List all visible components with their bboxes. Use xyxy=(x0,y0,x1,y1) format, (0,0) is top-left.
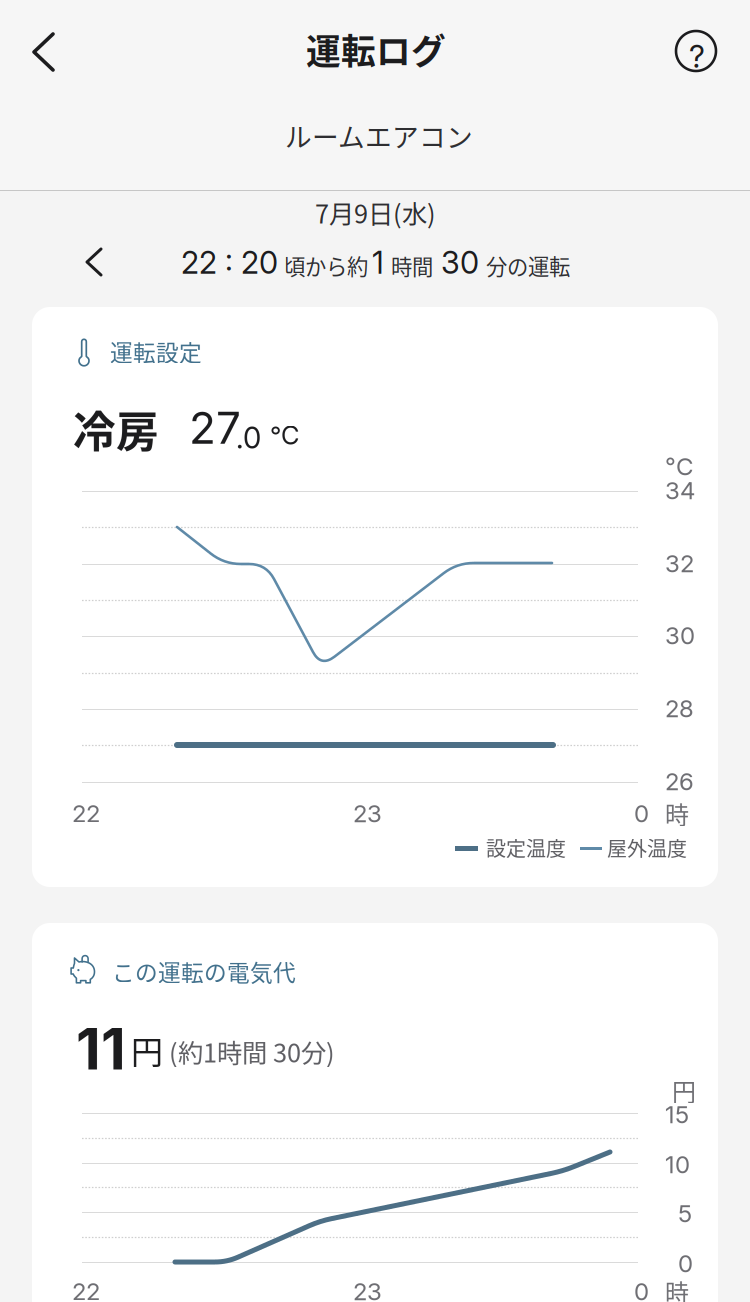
staticText: 23 xyxy=(353,799,382,828)
staticText: 冷房 xyxy=(73,398,159,460)
staticText: (約1時間 30分) xyxy=(169,1033,335,1070)
staticText: 32 xyxy=(665,549,694,578)
button[interactable]: Help xyxy=(654,0,746,104)
staticText: °C xyxy=(665,452,693,481)
staticText: 30 xyxy=(665,621,695,650)
staticText: 時間 xyxy=(391,250,433,281)
staticText: 22 xyxy=(72,799,100,828)
staticText: 22 : 20 xyxy=(181,244,278,281)
staticText: 1 xyxy=(372,244,384,281)
staticText: °C xyxy=(270,420,299,451)
staticText: 11 xyxy=(76,1014,126,1083)
staticText: 分の運転 xyxy=(486,250,570,281)
staticText: 0 xyxy=(634,1277,649,1302)
staticText: 円 xyxy=(131,1027,163,1073)
staticText: 頃から約 xyxy=(284,250,368,281)
staticText: 設定温度 xyxy=(486,833,566,862)
staticText: 0 xyxy=(634,799,649,828)
staticText: 運転ログ xyxy=(306,24,446,74)
staticText: 30 xyxy=(441,244,479,281)
staticText: 運転設定 xyxy=(110,335,202,368)
staticText: 円 xyxy=(672,1073,696,1108)
staticText: 屋外温度 xyxy=(607,833,687,862)
staticText: 7月9日(水) xyxy=(315,194,436,231)
staticText: .0 xyxy=(236,420,261,455)
staticText: 34 xyxy=(665,476,695,505)
button[interactable]: Previous session xyxy=(61,235,141,297)
staticText: 時 xyxy=(665,1274,689,1302)
staticText: 23 xyxy=(353,1277,382,1302)
button[interactable]: Back xyxy=(0,0,92,104)
staticText: 28 xyxy=(665,694,694,723)
staticText: この運転の電気代 xyxy=(112,955,296,988)
staticText: 10 xyxy=(665,1150,690,1179)
staticText: ? xyxy=(689,38,705,75)
staticText: ルームエアコン xyxy=(285,116,473,155)
staticText: 0 xyxy=(678,1249,693,1278)
staticText: 27 xyxy=(189,401,241,454)
staticText: 5 xyxy=(678,1199,692,1228)
staticText: 時 xyxy=(665,796,689,831)
staticText: 22 xyxy=(72,1277,100,1302)
staticText: 26 xyxy=(665,767,694,796)
staticText: 15 xyxy=(665,1100,689,1129)
